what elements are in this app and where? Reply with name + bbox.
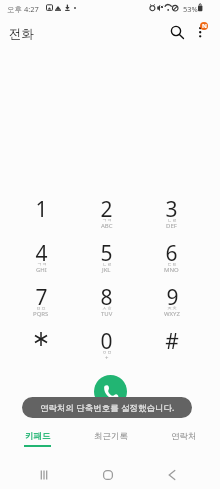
- button[interactable]: 키패드: [0, 424, 74, 452]
- button[interactable]: 최근기록: [74, 424, 147, 452]
- button[interactable]: 9: [139, 282, 204, 326]
- staticText: PQRS: [33, 310, 49, 318]
- button[interactable]: 7: [8, 282, 74, 326]
- staticText: 키패드: [25, 431, 51, 442]
- button[interactable]: 더보기: [186, 18, 214, 46]
- staticText: 연락처의 단축번호를 설정했습니다.: [40, 402, 175, 414]
- staticText: 9: [166, 283, 179, 312]
- staticText: ㄱㅋ: [102, 217, 112, 223]
- button[interactable]: [8, 326, 74, 370]
- staticText: N: [202, 22, 207, 30]
- staticText: ㄷㅌ: [167, 261, 177, 267]
- button[interactable]: 최근 앱: [26, 461, 62, 489]
- staticText: DEF: [166, 222, 177, 230]
- button[interactable]: 4: [8, 238, 74, 282]
- staticText: ㄴㄹ: [167, 217, 177, 223]
- staticText: 4: [35, 239, 48, 268]
- button[interactable]: 연락처: [147, 424, 220, 452]
- staticText: 최근기록: [94, 431, 128, 442]
- staticText: GHI: [36, 266, 47, 274]
- button[interactable]: 6: [139, 238, 204, 282]
- staticText: ㄱㅋ: [37, 261, 47, 267]
- button[interactable]: 8: [74, 282, 139, 326]
- button[interactable]: 홈: [90, 461, 126, 489]
- button[interactable]: 2: [74, 194, 139, 238]
- staticText: 6: [165, 239, 178, 268]
- staticText: #: [165, 327, 179, 356]
- staticText: MNO: [164, 266, 179, 274]
- staticText: WXYZ: [164, 310, 180, 318]
- staticText: JKL: [102, 266, 111, 274]
- staticText: 1: [35, 195, 48, 224]
- staticText: ㅈㅊ: [167, 305, 177, 311]
- staticText: 0: [100, 327, 113, 356]
- staticText: 5: [100, 239, 113, 268]
- button[interactable]: 3: [139, 194, 204, 238]
- staticText: 오후 4:27: [7, 4, 39, 14]
- staticText: 전화: [9, 26, 34, 42]
- staticText: 8: [100, 283, 113, 312]
- staticText: ABC: [101, 222, 113, 230]
- staticText: 7: [35, 283, 48, 312]
- button[interactable]: #: [139, 326, 204, 370]
- staticText: 53%: [183, 4, 198, 14]
- button[interactable]: 검색: [162, 18, 190, 46]
- staticText: 연락처: [171, 431, 197, 442]
- staticText: ㅇㅁ: [102, 349, 112, 355]
- staticText: +: [105, 354, 109, 362]
- staticText: 2: [100, 195, 113, 224]
- button[interactable]: 0: [74, 326, 139, 370]
- staticText: TUV: [101, 310, 113, 318]
- staticText: ㄴㄹ: [102, 261, 112, 267]
- button[interactable]: 5: [74, 238, 139, 282]
- staticText: ㅅㅎ: [102, 305, 112, 311]
- staticText: ㅂㅍ: [36, 305, 46, 311]
- button[interactable]: 1: [8, 194, 74, 238]
- button[interactable]: 뒤로: [154, 461, 190, 489]
- button[interactable]: 전화 걸기: [94, 375, 127, 408]
- staticText: 3: [165, 195, 178, 224]
